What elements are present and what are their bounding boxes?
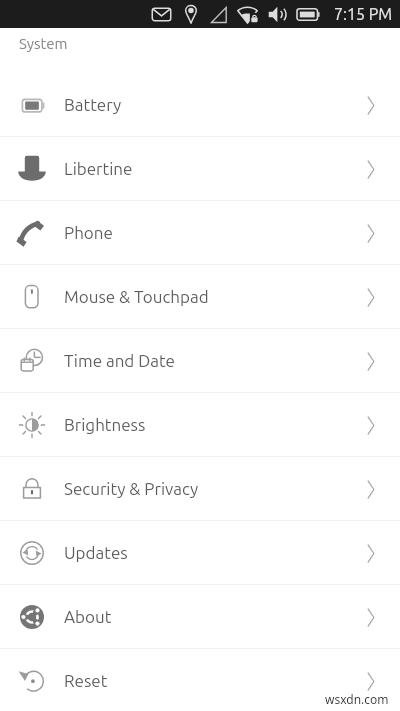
staticText: Libertine [64, 159, 133, 178]
button[interactable]: Mouse & Touchpad [0, 265, 400, 328]
staticText: About [64, 607, 112, 626]
button[interactable]: Brightness [0, 393, 400, 456]
staticText: 7:15 PM [334, 5, 393, 23]
button[interactable]: Phone [0, 201, 400, 264]
staticText: Battery [64, 95, 122, 114]
button[interactable]: About [0, 585, 400, 648]
button[interactable]: Updates [0, 521, 400, 584]
staticText: Brightness [64, 415, 146, 434]
staticText: Mouse & Touchpad [64, 287, 209, 306]
staticText: System [19, 35, 68, 52]
staticText: Updates [64, 543, 128, 562]
staticText: Security & Privacy [64, 479, 199, 498]
staticText: Time and Date [64, 351, 175, 370]
button[interactable]: Battery [0, 73, 400, 136]
staticText: wsxdn.com [325, 691, 389, 707]
button[interactable]: Libertine [0, 137, 400, 200]
button[interactable]: Time and Date [0, 329, 400, 392]
button[interactable]: Security & Privacy [0, 457, 400, 520]
staticText: Phone [64, 223, 113, 242]
button[interactable]: Reset [0, 649, 400, 711]
staticText: Reset [64, 671, 108, 690]
